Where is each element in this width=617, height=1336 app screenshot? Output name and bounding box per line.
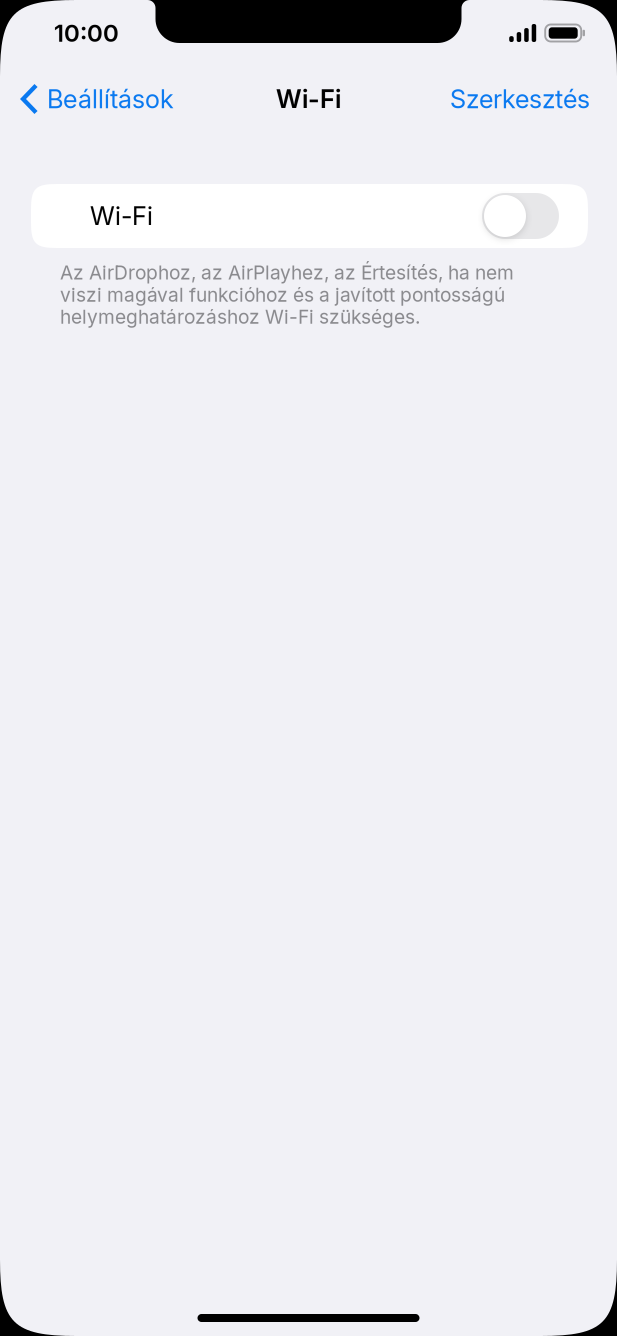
staticText: 10:00	[54, 18, 119, 47]
staticText: Wi-Fi	[276, 84, 341, 114]
staticText: Az AirDrophoz, az AirPlayhez, az Értesít…	[60, 261, 514, 328]
staticText: Beállítások	[47, 84, 174, 114]
staticText: Szerkesztés	[450, 84, 590, 114]
button[interactable]: Szerkesztés	[450, 76, 617, 122]
button[interactable]: Beállítások	[0, 76, 174, 122]
button[interactable]: Wi-Fi, off	[482, 193, 559, 239]
staticText: Wi-Fi	[90, 201, 153, 231]
